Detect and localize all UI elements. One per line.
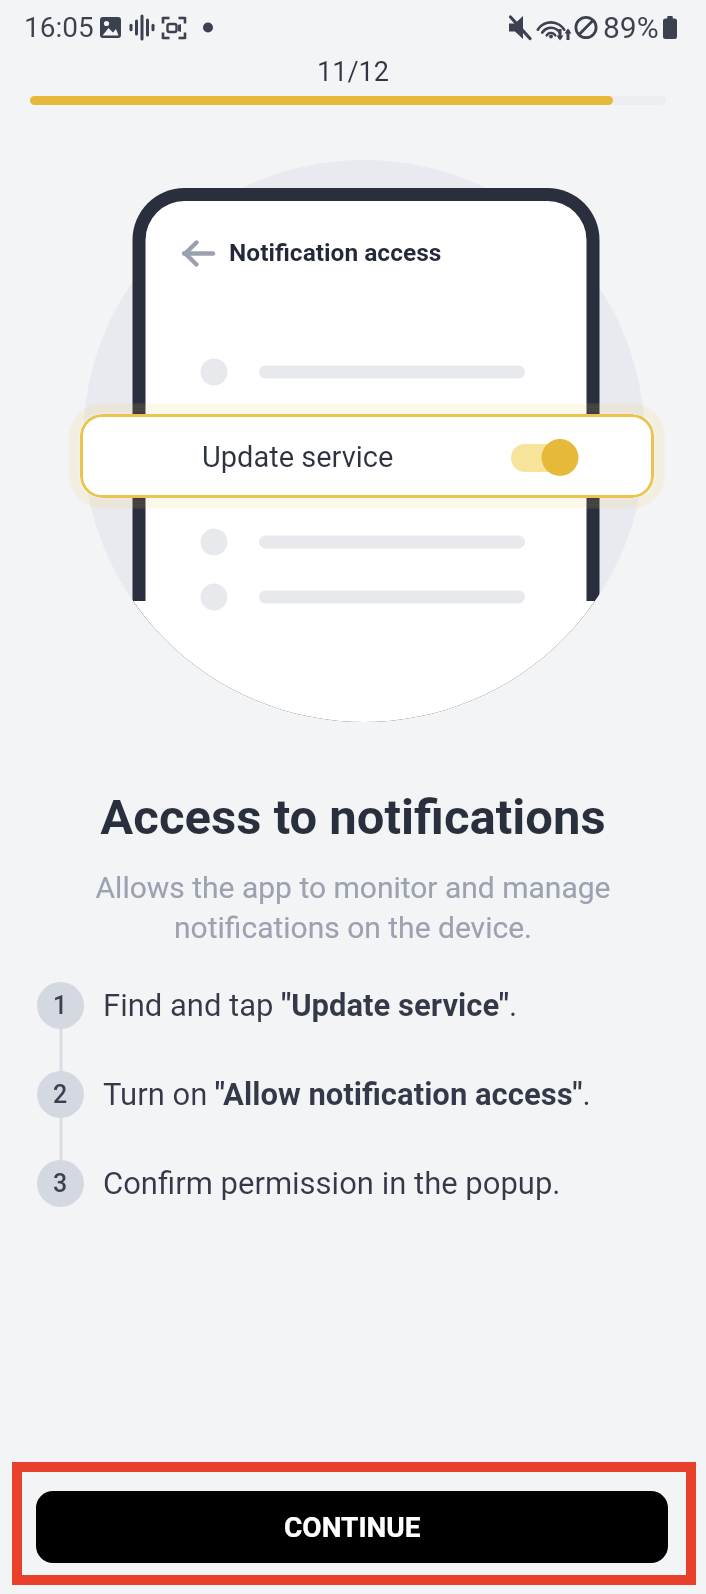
button[interactable]: CONTINUE [36,1491,668,1563]
button[interactable]: 1 [37,979,518,1031]
staticText: CONTINUE [284,1511,421,1544]
staticText: Confirm permission in the popup. [103,1165,561,1201]
staticText: 16:05 [24,11,94,44]
staticText: 89% [603,10,659,45]
staticText: 2 [53,1080,68,1109]
button[interactable]: 2 [37,1068,591,1120]
button[interactable]: Update service [80,414,654,498]
button[interactable]: Back [174,233,216,275]
staticText: Access to notifications [0,789,706,846]
button[interactable]: Update service toggle, on [505,436,583,480]
staticText: Notification access [229,238,442,267]
staticText: 3 [53,1169,68,1198]
staticText: 11/12 [0,56,706,88]
staticText: Turn on "Allow notification access". [103,1076,591,1112]
button[interactable]: 3 [37,1157,561,1209]
staticText: Find and tap "Update service". [103,987,518,1023]
staticText: Update service [202,440,394,474]
staticText: Allows the app to monitor and manage not… [0,870,706,946]
staticText: 1 [53,991,68,1020]
